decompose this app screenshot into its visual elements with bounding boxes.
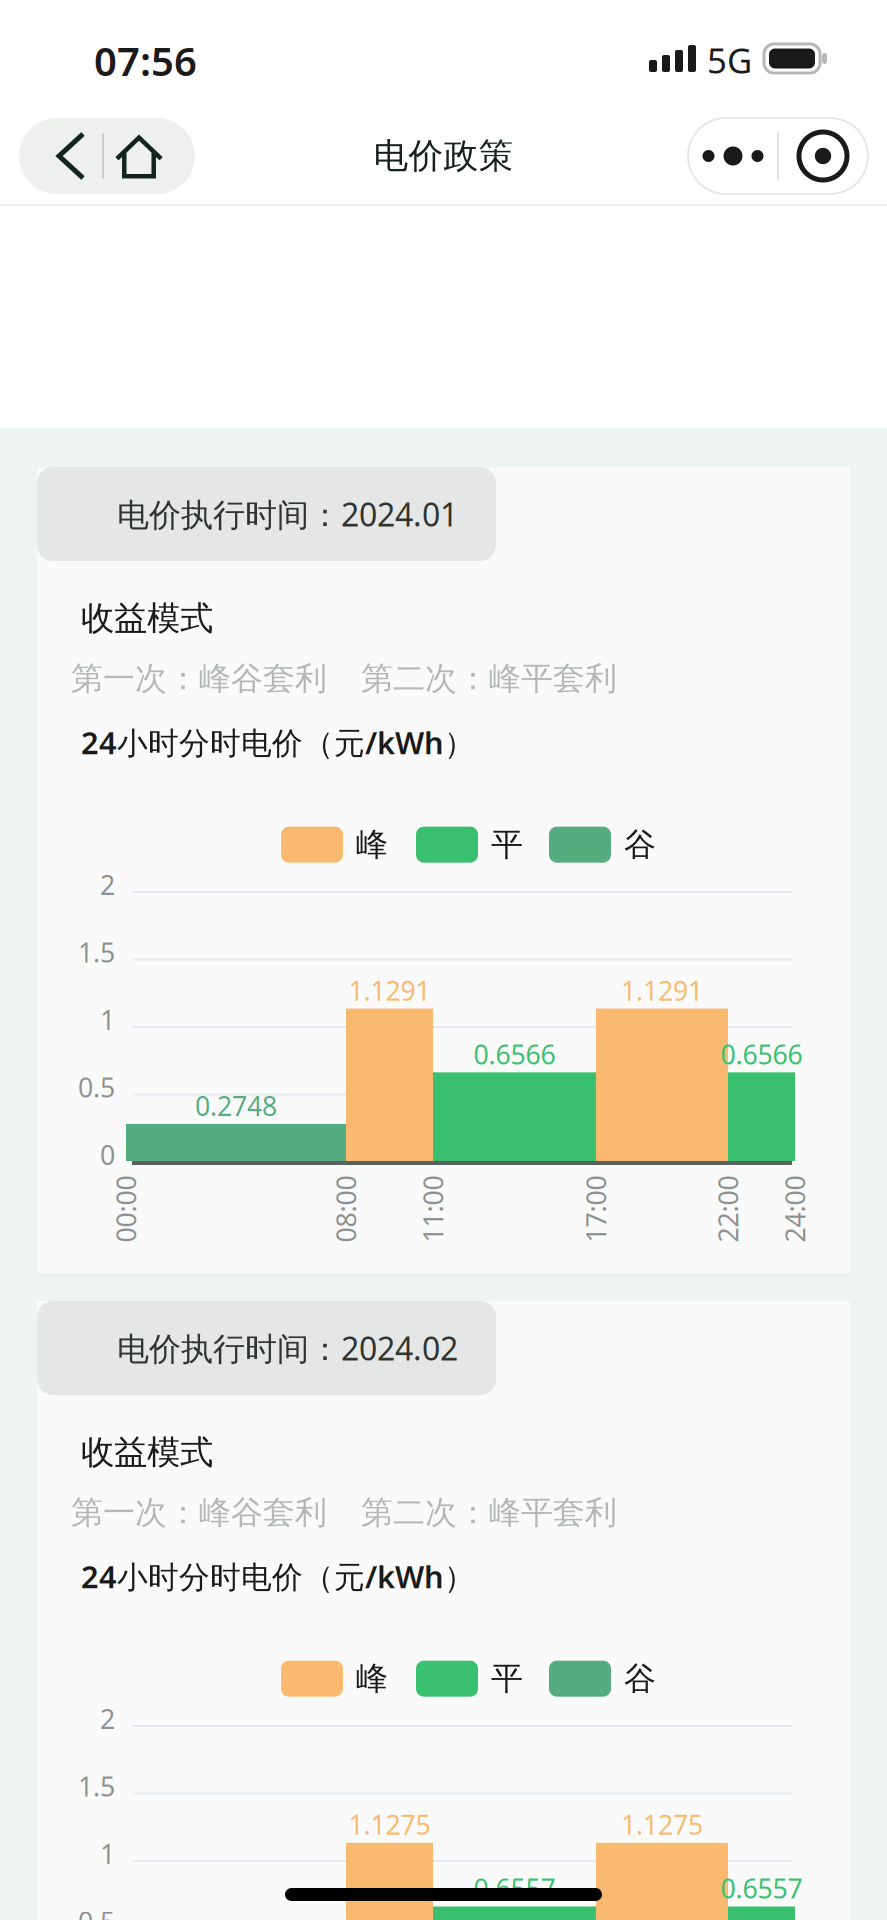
staticText: 第一次：峰谷套利 <box>71 1493 327 1532</box>
staticText: 0.6566 <box>720 1036 802 1072</box>
staticText: 22:00 <box>694 1191 761 1227</box>
staticText: 平 <box>491 825 523 864</box>
staticText: 2 <box>100 867 115 902</box>
button[interactable]: Back and Home <box>19 118 195 194</box>
staticText: 江苏省/全省 <box>188 453 365 498</box>
staticText: 00:00 <box>92 1191 159 1227</box>
button[interactable]: Choose region <box>40 453 84 497</box>
staticText: 第一次：峰谷套利 <box>71 659 327 698</box>
staticText: 平 <box>491 1659 523 1698</box>
staticText: 0.6557 <box>473 1870 555 1906</box>
staticText: 11:00 <box>399 1191 466 1227</box>
button[interactable]: More options and Close <box>688 118 868 194</box>
staticText: 0.6557 <box>720 1870 802 1906</box>
staticText: 收益模式 <box>81 1432 213 1473</box>
staticText: 电价政策 <box>373 135 513 177</box>
staticText: 峰 <box>356 1659 388 1698</box>
staticText: 0.6566 <box>473 1036 555 1072</box>
staticText: 谷 <box>624 825 656 864</box>
staticText: 5G <box>707 37 752 83</box>
staticText: 08:00 <box>312 1191 379 1227</box>
staticText: 0.5 <box>78 1903 115 1920</box>
staticText: 24:00 <box>761 1191 828 1227</box>
staticText: 1.1275 <box>621 1807 703 1842</box>
staticText: 17:00 <box>562 1191 629 1227</box>
button[interactable]: 江苏省/全省 <box>110 432 858 519</box>
staticText: 07:56 <box>94 34 197 87</box>
staticText: 第二次：峰平套利 <box>361 659 617 698</box>
staticText: 0 <box>100 1137 115 1172</box>
staticText: 1.1291 <box>348 973 430 1008</box>
staticText: 第二次：峰平套利 <box>361 1493 617 1532</box>
staticText: 2 <box>100 1701 115 1736</box>
staticText: 1 <box>100 1002 115 1037</box>
staticText: 峰 <box>356 825 388 864</box>
staticText: 1.1291 <box>621 973 703 1008</box>
staticText: 24小时分时电价（元/kWh） <box>81 722 475 763</box>
staticText: 大工业用电/两部制 <box>142 552 410 595</box>
staticText: 收益模式 <box>81 598 213 639</box>
staticText: 24小时分时电价（元/kWh） <box>81 1556 475 1597</box>
staticText: 电价执行时间：2024.01 <box>117 493 458 535</box>
staticText: 电价执行时间：2024.02 <box>117 1327 458 1369</box>
staticText: 谷 <box>624 1659 656 1698</box>
staticText: 1.1275 <box>348 1807 430 1842</box>
staticText: 1 <box>100 1836 115 1871</box>
staticText: 1.5 <box>78 1768 115 1804</box>
staticText: 1.5 <box>78 934 115 970</box>
button[interactable]: 大工业用电/两部制 <box>112 539 535 608</box>
staticText: 0.2748 <box>195 1088 277 1123</box>
staticText: 0.5 <box>78 1069 115 1105</box>
